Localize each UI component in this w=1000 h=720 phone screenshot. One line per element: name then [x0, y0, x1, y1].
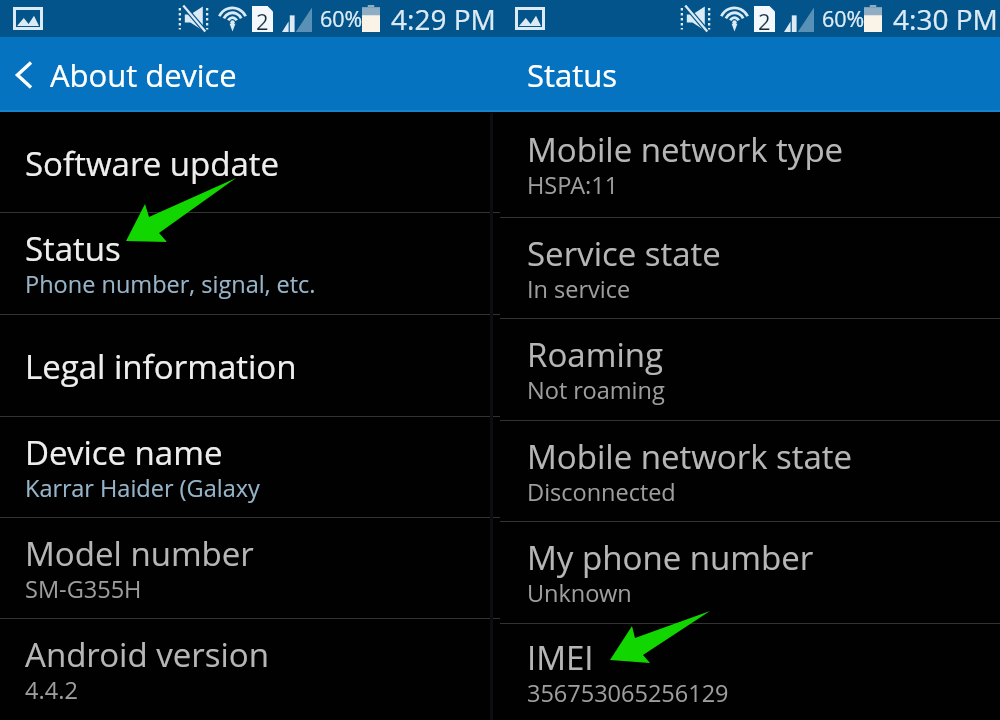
staticText: Karrar Haider (Galaxy — [25, 472, 260, 504]
staticText: 4:29 PM — [391, 0, 496, 37]
button[interactable]: IMEI — [500, 624, 1000, 720]
staticText: Service state — [527, 231, 721, 276]
staticText: Roaming — [527, 332, 664, 377]
staticText: 356753065256129 — [527, 677, 729, 709]
staticText: SM-G355H — [25, 573, 142, 605]
button[interactable]: My phone number — [500, 522, 1000, 623]
staticText: 60% — [320, 4, 363, 33]
staticText: In service — [527, 273, 631, 305]
staticText: Device name — [25, 430, 223, 475]
staticText: Model number — [25, 531, 254, 576]
staticText: IMEI — [527, 635, 594, 680]
staticText: Status — [25, 226, 121, 271]
staticText: About device — [50, 54, 237, 96]
staticText: Disconnected — [527, 476, 676, 508]
staticText: 2 — [758, 6, 771, 32]
staticText: 60% — [822, 4, 865, 33]
button[interactable]: Model number — [0, 518, 500, 618]
staticText: 4:30 PM — [893, 0, 998, 37]
staticText: HSPA:11 — [527, 169, 619, 201]
button[interactable]: Status — [0, 213, 500, 314]
button[interactable]: Device name — [0, 417, 500, 517]
button[interactable]: Android version — [0, 619, 500, 720]
button[interactable]: Roaming — [500, 319, 1000, 420]
staticText: Status — [527, 54, 617, 96]
button[interactable]: Back — [0, 37, 48, 112]
staticText: Software update — [25, 141, 280, 186]
staticText: Mobile network state — [527, 434, 853, 479]
button[interactable]: Mobile network state — [500, 421, 1000, 521]
button[interactable]: Software update — [0, 112, 500, 212]
staticText: Unknown — [527, 577, 632, 609]
staticText: Not roaming — [527, 374, 665, 406]
staticText: Android version — [25, 632, 270, 677]
staticText: 2 — [256, 6, 269, 32]
staticText: Phone number, signal, etc. — [25, 268, 316, 300]
button[interactable]: Service state — [500, 218, 1000, 318]
staticText: Legal information — [25, 344, 297, 389]
staticText: My phone number — [527, 535, 814, 580]
staticText: 4.4.2 — [25, 674, 78, 706]
button[interactable]: Mobile network type — [500, 112, 1000, 217]
button[interactable]: Legal information — [0, 315, 500, 416]
staticText: Mobile network type — [527, 127, 844, 172]
